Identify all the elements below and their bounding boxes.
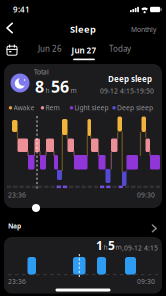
staticText: h — [45, 86, 49, 95]
button[interactable]: Choose date — [6, 44, 18, 56]
staticText: Today — [109, 43, 131, 54]
staticText: Rem — [45, 103, 59, 112]
staticText: Jun 26 — [38, 43, 62, 54]
staticText: m — [115, 243, 121, 252]
staticText: Light sleep — [74, 103, 108, 112]
staticText: 09:30 — [137, 190, 155, 199]
staticText: Awake — [13, 103, 34, 112]
button[interactable]: Jun 27 — [64, 45, 104, 60]
staticText: Total — [34, 67, 49, 76]
staticText: Nap — [8, 221, 21, 230]
staticText: Sleep — [70, 23, 96, 35]
button[interactable]: Today — [100, 43, 140, 54]
button[interactable]: Nap details — [149, 222, 159, 234]
staticText: 23:36 — [8, 190, 26, 199]
staticText: 09-12 4:15-19:50 — [100, 86, 154, 95]
staticText: Deep sleep — [117, 103, 153, 112]
staticText: Jun 27 — [71, 45, 96, 56]
staticText: 9:41 — [13, 4, 30, 15]
staticText: 56 — [51, 76, 69, 97]
staticText: h — [103, 243, 107, 252]
staticText: 1 — [96, 237, 103, 253]
button[interactable]: Monthly — [106, 25, 156, 34]
staticText: m — [70, 86, 76, 95]
staticText: 5 — [108, 237, 115, 253]
button[interactable]: Jun 26 — [30, 43, 70, 54]
staticText: 09:30 — [137, 277, 155, 286]
staticText: Deep sleep — [108, 73, 152, 84]
staticText: 8 — [35, 76, 44, 97]
staticText: Monthly — [131, 25, 156, 34]
staticText: 23:36 — [8, 277, 26, 286]
staticText: ,09-12 4:15 — [122, 243, 158, 252]
button[interactable]: Back — [2, 20, 18, 36]
